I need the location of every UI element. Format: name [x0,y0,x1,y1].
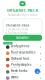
button[interactable]: Root vegetables [0,50,45,56]
button[interactable]: Orchard fruit [0,56,45,63]
button[interactable]: Extras [0,75,45,80]
staticText: THIS BOX [4,42,11,44]
staticText: Raw honey [11,79,19,80]
staticText: This week's box [6,24,29,27]
staticText: Pantry staples [11,63,31,66]
button[interactable]: Subscribe [3,35,42,41]
staticText: Sustainability in a box [8,13,37,17]
staticText: Basil, mint [11,73,16,75]
button[interactable]: Fresh herbs [0,69,45,75]
staticText: Olive oil, beans [11,67,20,68]
staticText: Carrots, beets [11,54,21,56]
staticText: Leafy greens [11,44,29,48]
staticText: Extras [11,75,18,79]
staticText: Fresh herbs [11,69,27,73]
button[interactable]: THIS BOX [3,42,13,44]
button[interactable]: Leafy greens [0,44,45,50]
staticText: 6 seasonal items [6,28,28,31]
button[interactable]: Pantry staples [0,63,45,69]
staticText: Root vegetables [11,51,35,54]
staticText: Apples, pears [11,60,21,62]
button[interactable]: Add item [35,69,40,74]
staticText: ORGANIC PACK [6,8,38,13]
staticText: Subscribe [16,36,29,39]
staticText: Orchard fruit [11,57,29,60]
staticText: + [36,69,38,74]
staticText: Delivers Friday [8,31,27,35]
